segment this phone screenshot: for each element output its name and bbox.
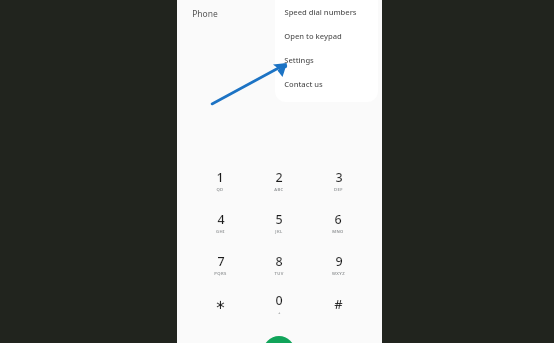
staticText: +: [278, 310, 281, 316]
staticText: 8: [275, 253, 283, 270]
button[interactable]: 6: [315, 203, 361, 243]
button[interactable]: 7: [197, 245, 243, 285]
staticText: #: [334, 295, 343, 313]
button[interactable]: #: [315, 284, 361, 324]
staticText: ∗: [215, 297, 226, 312]
staticText: 7: [217, 253, 225, 270]
staticText: GHI: [216, 229, 225, 235]
staticText: 3: [335, 169, 343, 186]
staticText: 4: [217, 211, 225, 228]
staticText: QD: [216, 187, 224, 193]
button[interactable]: Settings: [275, 48, 378, 72]
staticText: Open to keypad: [284, 31, 342, 41]
staticText: Phone: [192, 8, 218, 20]
staticText: Settings: [284, 55, 314, 65]
staticText: 9: [335, 253, 343, 270]
staticText: 1: [216, 169, 224, 186]
button[interactable]: 9: [315, 245, 361, 285]
staticText: TUV: [274, 271, 284, 277]
staticText: JKL: [275, 229, 283, 235]
button[interactable]: Contact us: [275, 72, 378, 96]
staticText: PQRS: [214, 271, 227, 277]
button[interactable]: Call: [263, 336, 295, 343]
staticText: MNO: [332, 229, 344, 235]
staticText: 0: [275, 292, 283, 309]
button[interactable]: 2: [256, 161, 302, 201]
staticText: Speed dial numbers: [284, 7, 357, 17]
button[interactable]: 4: [197, 203, 243, 243]
staticText: 2: [275, 169, 283, 186]
button[interactable]: 1: [197, 161, 243, 201]
button[interactable]: 0: [256, 284, 302, 324]
button[interactable]: Phone: [190, 6, 220, 22]
button[interactable]: 3: [315, 161, 361, 201]
button[interactable]: Speed dial numbers: [275, 0, 378, 24]
staticText: 5: [275, 211, 283, 228]
button[interactable]: Open to keypad: [275, 24, 378, 48]
staticText: Contact us: [284, 79, 323, 89]
button[interactable]: 8: [256, 245, 302, 285]
staticText: ABC: [274, 187, 284, 193]
staticText: 6: [334, 211, 342, 228]
button[interactable]: ∗: [197, 284, 243, 324]
staticText: WXYZ: [332, 271, 345, 277]
staticText: DEF: [334, 187, 343, 193]
button[interactable]: 5: [256, 203, 302, 243]
